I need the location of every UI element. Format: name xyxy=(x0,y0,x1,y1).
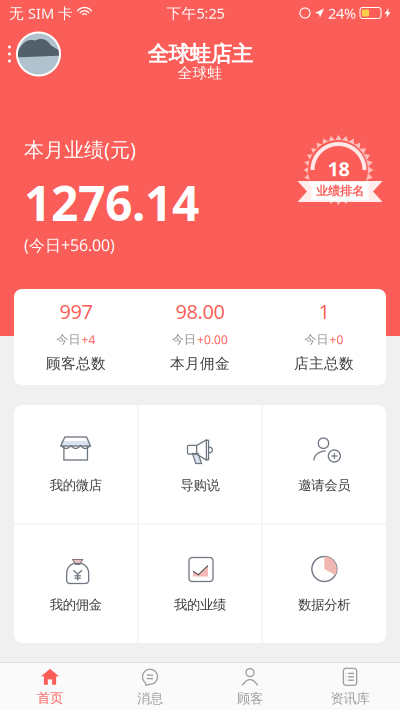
staticText: 本月佣金 xyxy=(170,354,230,372)
button[interactable]: 我的业绩 xyxy=(138,524,262,643)
staticText: +4 xyxy=(81,332,95,347)
staticText: 顾客总数 xyxy=(46,354,106,372)
staticText: 本月业绩(元) xyxy=(24,136,136,163)
button[interactable]: 我的微店 xyxy=(14,405,137,523)
staticText: 无 SIM 卡 xyxy=(9,3,73,23)
staticText: 1 xyxy=(318,298,329,325)
staticText: 我的微店 xyxy=(50,477,102,493)
staticText: 店主总数 xyxy=(294,354,354,372)
staticText: 今日 xyxy=(304,332,328,347)
button[interactable]: 资讯库 xyxy=(300,663,400,710)
staticText: +0.00 xyxy=(197,332,228,347)
button[interactable]: 顾客 xyxy=(200,663,300,710)
staticText: 下午5:25 xyxy=(166,3,224,23)
button[interactable]: 导购说 xyxy=(138,405,262,523)
button[interactable]: 首页 xyxy=(0,663,100,710)
button[interactable]: 数据分析 xyxy=(263,524,386,643)
button[interactable]: 邀请会员 xyxy=(263,405,386,523)
staticText: 首页 xyxy=(37,690,63,706)
staticText: 顾客 xyxy=(237,690,263,707)
staticText: (今日+56.00) xyxy=(24,234,115,255)
staticText: 今日 xyxy=(172,332,196,347)
staticText: 资讯库 xyxy=(330,690,369,707)
staticText: 98.00 xyxy=(175,298,224,325)
staticText: 邀请会员 xyxy=(298,477,350,493)
staticText: 18 xyxy=(327,155,349,182)
staticText: 24% xyxy=(328,3,356,23)
staticText: 我的佣金 xyxy=(50,597,102,613)
staticText: 1276.14 xyxy=(24,171,199,234)
staticText: 业绩排名 xyxy=(316,184,364,198)
staticText: 997 xyxy=(59,298,92,325)
staticText: 全球蛙 xyxy=(177,64,222,82)
staticText: 今日 xyxy=(56,332,80,347)
button[interactable]: 我的佣金 xyxy=(14,524,137,643)
staticText: 我的业绩 xyxy=(174,597,226,613)
button[interactable]: 店主头像 xyxy=(0,26,60,82)
staticText: +0 xyxy=(329,332,343,347)
staticText: 导购说 xyxy=(180,477,219,493)
staticText: 全球蛙店主 xyxy=(147,41,252,67)
button[interactable]: 消息 xyxy=(100,663,200,710)
staticText: 消息 xyxy=(137,690,163,707)
staticText: 数据分析 xyxy=(298,597,350,613)
